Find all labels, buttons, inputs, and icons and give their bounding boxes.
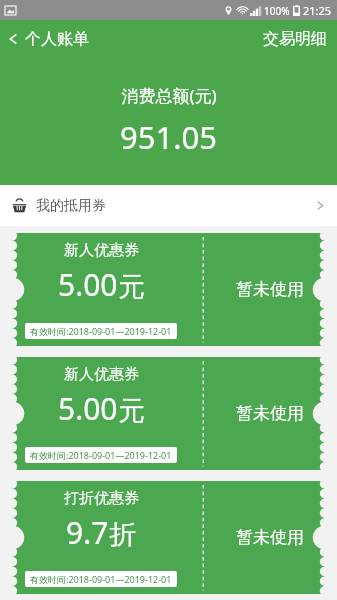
staticText: 个人账单 <box>25 29 89 49</box>
button[interactable]: 新人优惠券 <box>0 233 337 346</box>
staticText: 元 <box>118 270 145 304</box>
button[interactable]: 我的抵用券 <box>0 185 337 226</box>
staticText: 951.05 <box>120 116 217 158</box>
staticText: 5.00 <box>58 388 118 429</box>
staticText: 暂未使用 <box>236 279 304 300</box>
button[interactable]: 交易明细 <box>253 23 337 55</box>
staticText: 100% <box>264 4 290 18</box>
other: Back <box>8 34 18 44</box>
staticText: 有效时间:2018-09-01—2019-12-01 <box>30 573 172 585</box>
staticText: 交易明细 <box>263 29 327 49</box>
button[interactable]: Back <box>0 25 99 53</box>
staticText: 9.7 <box>66 512 109 553</box>
button[interactable]: 新人优惠券 <box>0 357 337 470</box>
staticText: 折 <box>109 518 136 552</box>
staticText: 有效时间:2018-09-01—2019-12-01 <box>30 449 172 461</box>
staticText: 消费总额(元) <box>121 84 217 107</box>
staticText: 有效时间:2018-09-01—2019-12-01 <box>30 325 172 337</box>
staticText: 我的抵用券 <box>36 197 106 215</box>
staticText: 21:25 <box>303 3 332 18</box>
staticText: 新人优惠券 <box>64 241 139 260</box>
staticText: 暂未使用 <box>236 403 304 424</box>
button[interactable]: 打折优惠券 <box>0 481 337 594</box>
staticText: 元 <box>118 394 145 428</box>
staticText: 新人优惠券 <box>64 365 139 384</box>
staticText: 打折优惠券 <box>64 489 139 508</box>
staticText: 5.00 <box>58 264 118 305</box>
staticText: 暂未使用 <box>236 527 304 548</box>
other: More coupons <box>316 201 325 210</box>
